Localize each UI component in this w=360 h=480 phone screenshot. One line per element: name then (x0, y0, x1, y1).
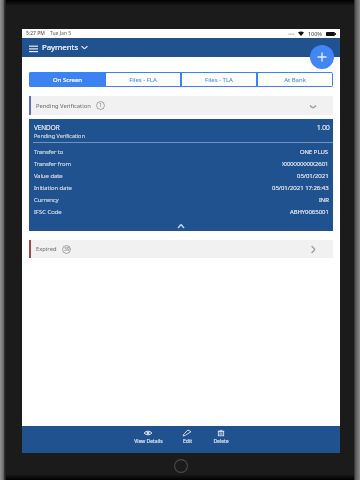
staticText: 39 (64, 246, 70, 253)
staticText: Tue Jan 5 (50, 30, 72, 37)
staticText: ONE PLUS (300, 148, 329, 156)
staticText: Pending Verification (36, 102, 91, 110)
staticText: VENDOR (34, 123, 60, 132)
button[interactable]: Expand (308, 244, 318, 254)
staticText: Value date (34, 172, 63, 180)
staticText: Payments (42, 42, 79, 53)
staticText: At Bank (284, 76, 306, 84)
staticText: 1.00 (317, 123, 330, 132)
staticText: View Details (134, 438, 163, 445)
staticText: INR (319, 196, 329, 204)
button[interactable]: Payments (41, 40, 89, 55)
staticText: 05/01/2021 17:26:43 (272, 184, 329, 192)
staticText: Pending Verification (34, 132, 85, 140)
staticText: IFSC Code (34, 208, 62, 216)
staticText: Transfer to (34, 148, 64, 156)
button[interactable]: At Bank (257, 72, 333, 87)
staticText: On Screen (53, 76, 82, 84)
staticText: Expired (36, 245, 57, 253)
button[interactable]: Collapse (308, 101, 318, 111)
button[interactable]: View Details (131, 429, 165, 446)
button[interactable]: Files - TLA (181, 72, 257, 87)
staticText: Transfer from (34, 160, 71, 168)
staticText: XXXXXXXXXX2601 (282, 160, 329, 168)
button[interactable]: Collapse details (29, 220, 333, 231)
button[interactable]: Edit (170, 429, 204, 446)
staticText: Currency (34, 196, 59, 204)
button[interactable]: Add payment (310, 45, 334, 69)
staticText: 100% (308, 30, 322, 37)
staticText: Delete (213, 438, 229, 445)
staticText: 05/01/2021 (297, 172, 329, 180)
button[interactable]: Menu (27, 42, 39, 54)
staticText: 1 (99, 102, 102, 109)
staticText: 5:27 PM (26, 30, 45, 37)
staticText: Initiation date (34, 184, 72, 192)
staticText: ABHY0065001 (290, 208, 329, 216)
staticText: Edit (183, 438, 192, 445)
button[interactable]: Expired (29, 240, 333, 258)
button[interactable]: On Screen (29, 72, 105, 87)
button[interactable]: Pending Verification (29, 96, 333, 115)
button[interactable]: Files - FLA (105, 72, 181, 87)
button[interactable]: Delete (204, 429, 238, 446)
staticText: Files - FLA (129, 76, 157, 84)
staticText: Files - TLA (205, 76, 233, 84)
